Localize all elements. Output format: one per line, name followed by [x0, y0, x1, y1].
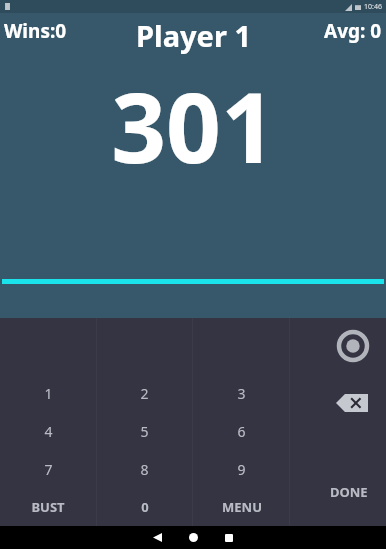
button[interactable]: 1 [0, 374, 96, 412]
button[interactable]: MENU [193, 488, 290, 526]
staticText: 301 [111, 60, 276, 191]
staticText: 7 [44, 460, 53, 479]
button[interactable]: Home [175, 526, 211, 549]
staticText: 2 [140, 384, 149, 403]
button[interactable]: Backspace [336, 394, 368, 412]
staticText: MENU [222, 498, 262, 516]
button[interactable]: DONE [326, 481, 372, 503]
staticText: 4 [44, 422, 53, 441]
staticText: 0 [141, 498, 149, 516]
button[interactable]: Player 1 [136, 15, 251, 55]
button[interactable]: 2 [96, 374, 193, 412]
button[interactable]: BUST [0, 488, 96, 526]
staticText: 9 [237, 460, 246, 479]
button[interactable]: 7 [0, 450, 96, 488]
button[interactable]: 5 [96, 412, 193, 450]
button[interactable]: 8 [96, 450, 193, 488]
staticText: 6 [237, 422, 246, 441]
staticText: 8 [140, 460, 149, 479]
button[interactable]: Bullseye [337, 330, 369, 362]
staticText: 10:46 [364, 2, 382, 12]
button[interactable]: Back [139, 526, 175, 549]
button[interactable]: 4 [0, 412, 96, 450]
staticText: 1 [44, 384, 53, 403]
button[interactable]: 3 [193, 374, 290, 412]
button[interactable]: Recents [211, 526, 247, 549]
button[interactable]: Avg: 0 [324, 15, 386, 44]
button[interactable]: 6 [193, 412, 290, 450]
staticText: BUST [31, 498, 65, 516]
staticText: 3 [237, 384, 246, 403]
button[interactable]: 9 [193, 450, 290, 488]
staticText: DONE [330, 483, 368, 501]
staticText: 5 [140, 422, 149, 441]
button[interactable]: Wins:0 [0, 15, 67, 44]
button[interactable]: 0 [96, 488, 193, 526]
